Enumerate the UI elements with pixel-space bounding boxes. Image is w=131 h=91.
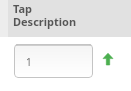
- staticText: Description: [13, 14, 77, 29]
- button[interactable]: 1: [14, 44, 93, 78]
- staticText: 1: [26, 55, 32, 69]
- staticText: Tap: [13, 1, 33, 16]
- button[interactable]: Move up: [100, 50, 116, 68]
